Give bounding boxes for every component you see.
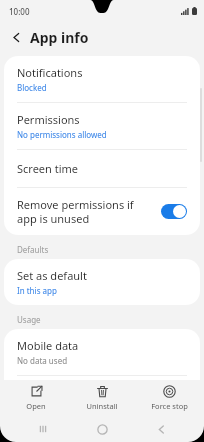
staticText: Mobile data	[17, 338, 79, 353]
button[interactable]: Open	[5, 383, 67, 413]
staticText: Open	[26, 401, 46, 411]
staticText: Uninstall	[86, 401, 118, 411]
button[interactable]: Mobile data	[4, 329, 200, 375]
staticText: Usage	[17, 314, 41, 325]
staticText: No permissions allowed	[17, 129, 107, 140]
button[interactable]: Back	[145, 416, 177, 442]
staticText: Battery	[17, 385, 55, 400]
staticText: Force stop	[151, 401, 188, 411]
button[interactable]: Remove permissions if app is unused	[161, 204, 187, 219]
staticText: Remove permissions if app is unused	[17, 197, 153, 226]
button[interactable]: Force stop	[138, 383, 200, 413]
staticText: Blocked	[17, 82, 47, 93]
staticText: Permissions	[17, 112, 80, 127]
staticText: App info	[30, 28, 89, 47]
staticText: Notifications	[17, 65, 83, 80]
button[interactable]: Uninstall	[71, 383, 133, 413]
staticText: Storage	[17, 432, 58, 433]
staticText: Screen time	[17, 161, 79, 176]
button[interactable]: Remove permissions if app is unused	[4, 188, 200, 235]
button[interactable]: Screen time	[4, 150, 200, 187]
button[interactable]: Back	[8, 29, 25, 46]
button[interactable]: Notifications	[4, 56, 200, 102]
button[interactable]: Recents	[27, 416, 59, 442]
staticText: 0% used since last fully charged	[17, 402, 137, 413]
staticText: Defaults	[17, 244, 49, 255]
button[interactable]: Storage	[4, 423, 200, 442]
button[interactable]: Set as default	[4, 259, 200, 305]
button[interactable]: Permissions	[4, 103, 200, 149]
staticText: Set as default	[17, 268, 87, 283]
staticText: No data used	[17, 355, 68, 366]
staticText: In this app	[17, 285, 57, 296]
button[interactable]: Battery	[4, 376, 200, 422]
staticText: 10:00	[9, 6, 30, 17]
button[interactable]: Home	[86, 416, 118, 442]
